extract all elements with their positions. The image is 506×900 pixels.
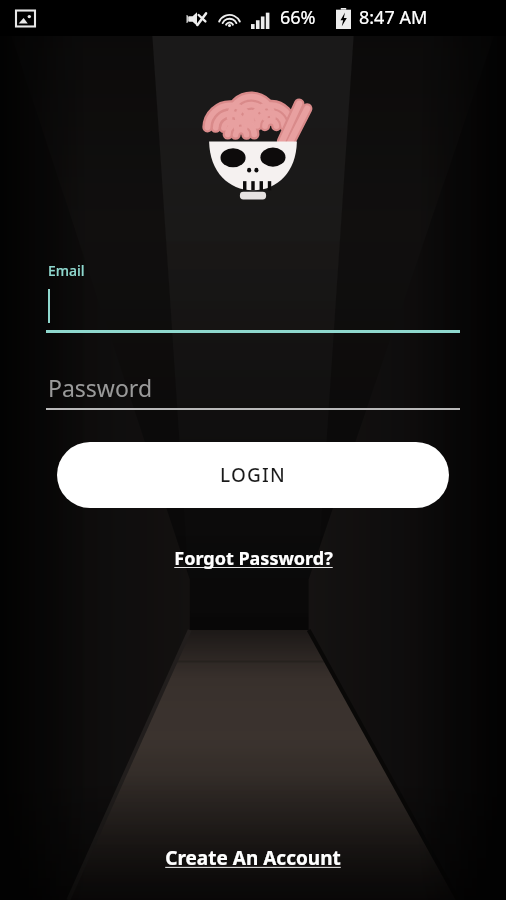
staticText: Password <box>48 372 153 403</box>
button[interactable]: Password <box>46 370 460 410</box>
staticText: Email <box>48 261 85 280</box>
button[interactable]: Email <box>46 255 460 333</box>
button[interactable]: LOGIN <box>57 442 449 508</box>
staticText: Forgot Password? <box>174 546 333 571</box>
staticText: Create An Account <box>165 845 341 871</box>
staticText: 66% <box>280 5 316 30</box>
button[interactable]: Create An Account <box>0 842 506 874</box>
staticText: 8:47 AM <box>359 5 428 30</box>
staticText: LOGIN <box>220 462 286 488</box>
button[interactable]: Forgot Password? <box>0 542 506 574</box>
